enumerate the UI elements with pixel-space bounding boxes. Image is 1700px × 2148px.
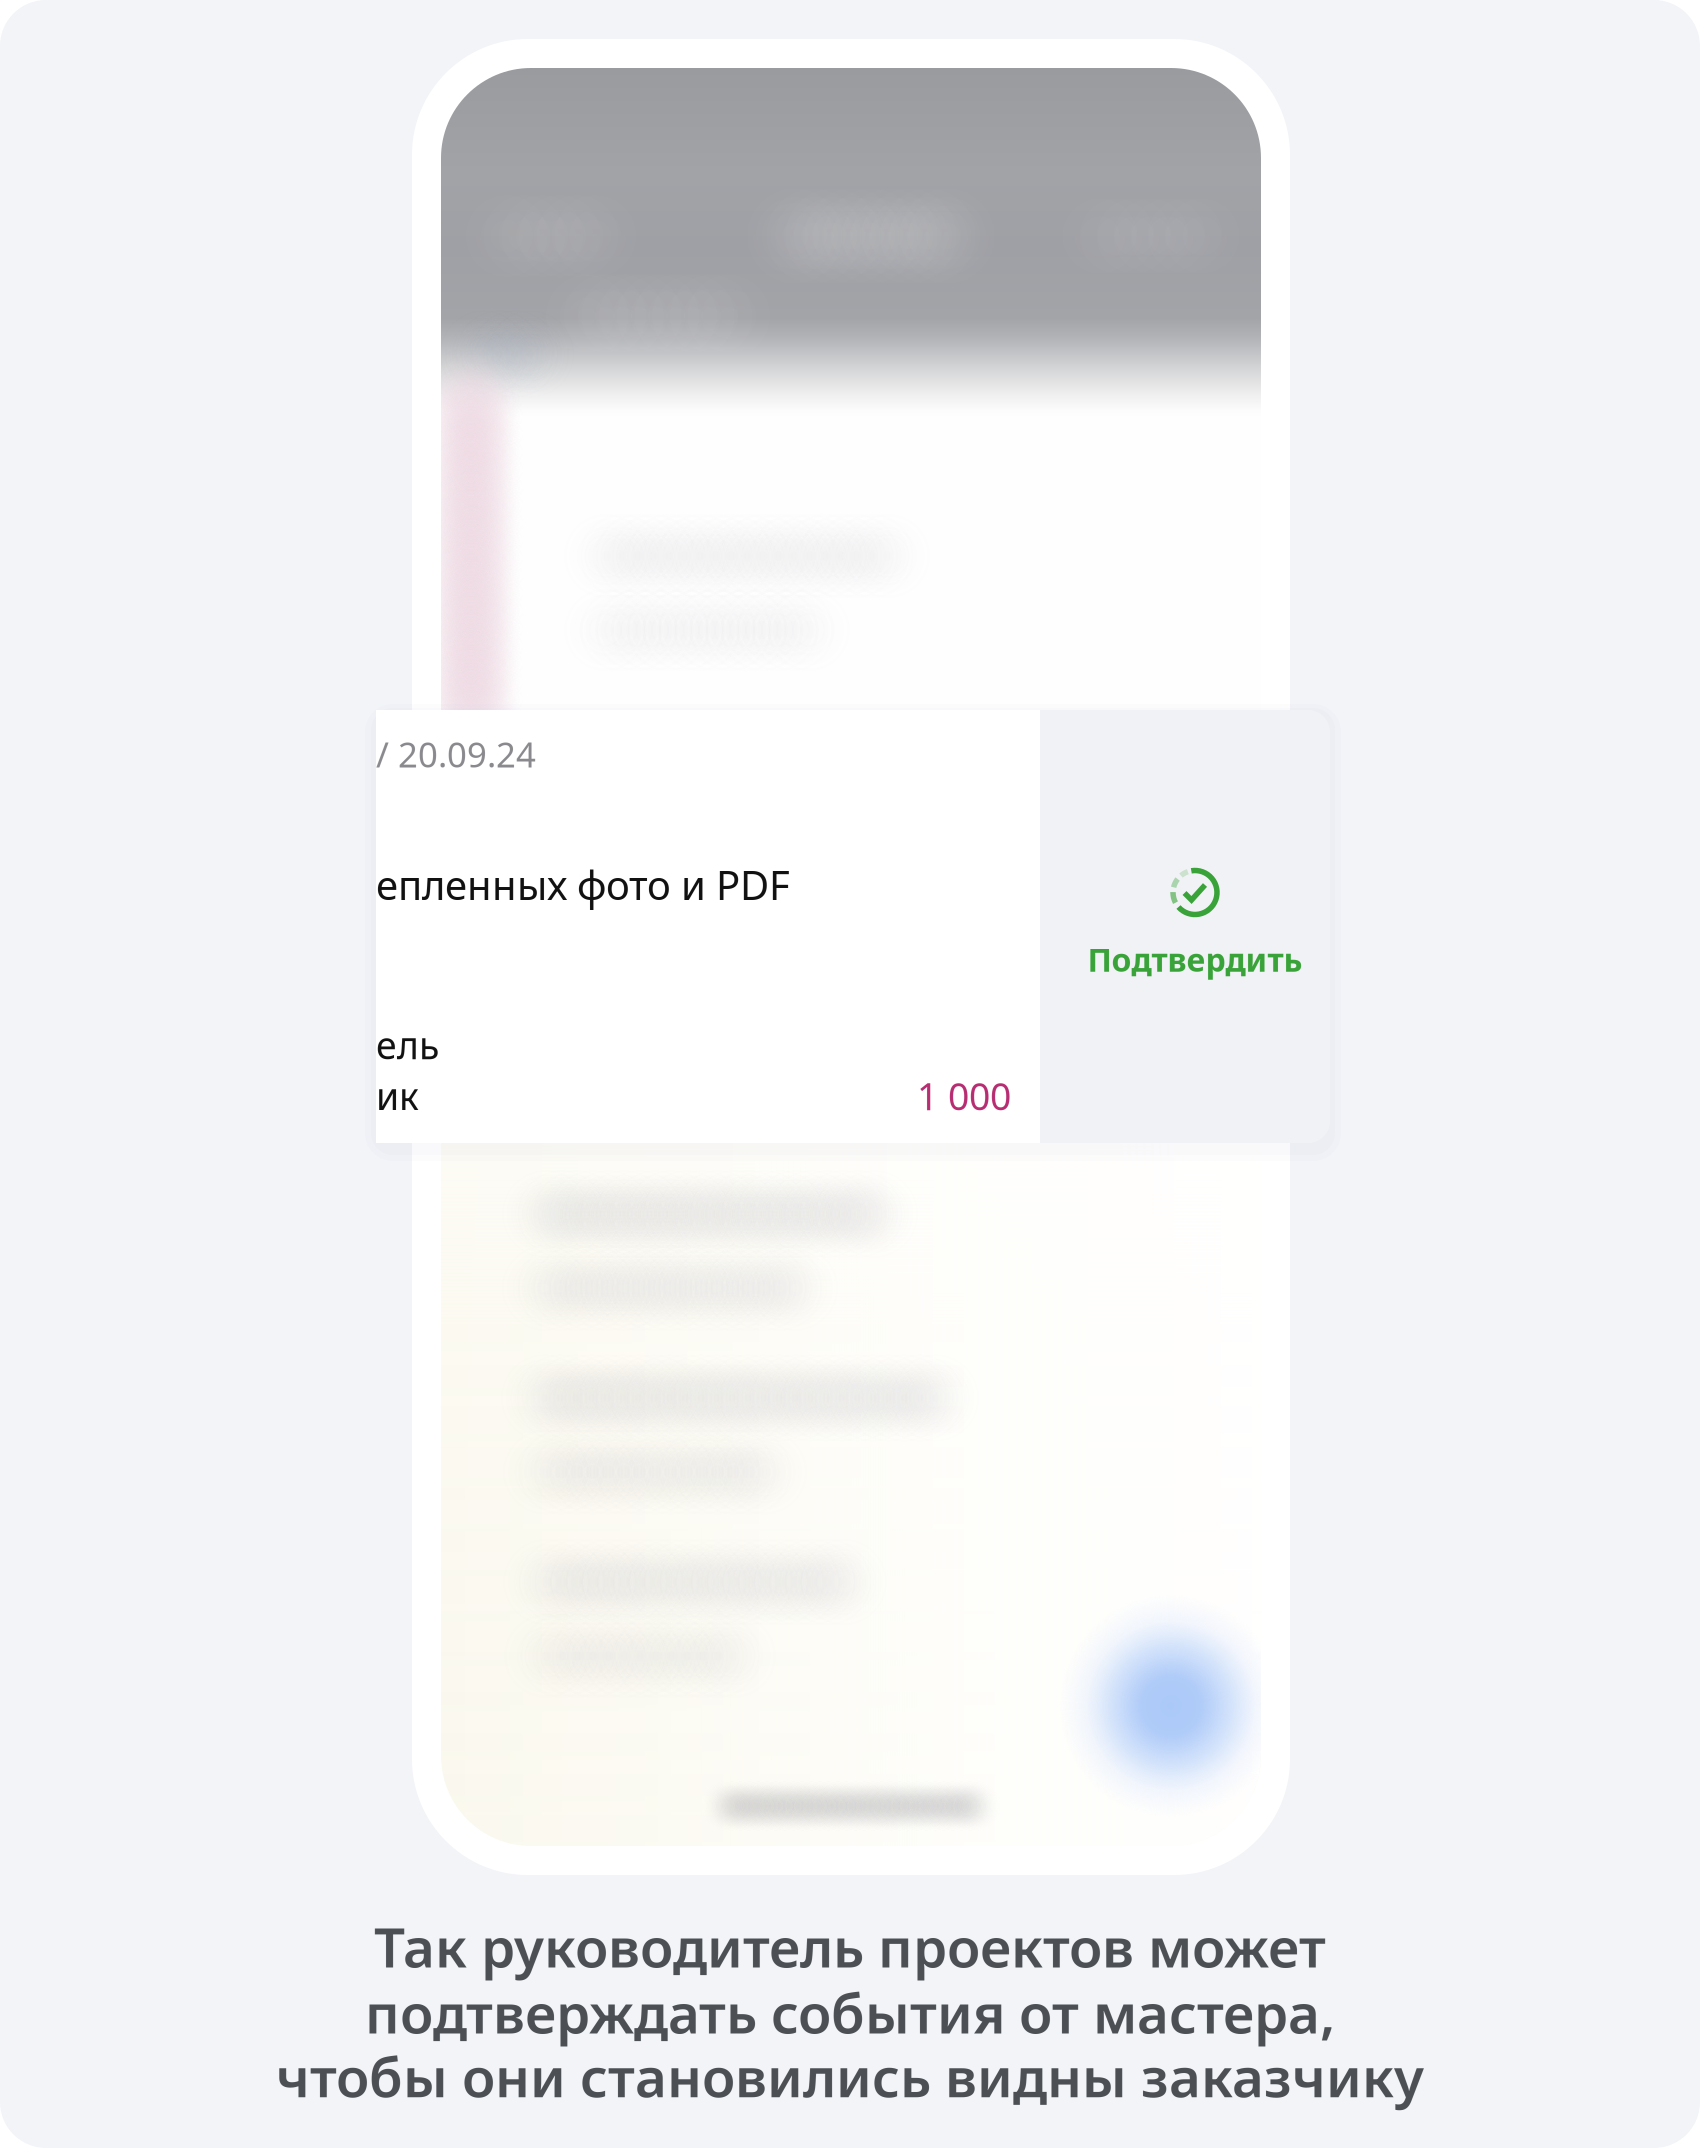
staticText: ик [376, 1071, 419, 1121]
staticText: 1 000 [917, 1071, 1011, 1121]
staticText: епленных фото и PDF [376, 858, 790, 911]
staticText: чтобы они становились видны заказчику [276, 2040, 1424, 2112]
staticText: Подтвердить [1087, 938, 1302, 980]
staticText: подтверждать события от мастера, [365, 1976, 1335, 2049]
button[interactable]: Подтвердить [1047, 710, 1343, 1143]
staticText: ель [376, 1020, 439, 1070]
staticText: Так руководитель проектов может [374, 1910, 1326, 1983]
staticText: / 20.09.24 [376, 731, 536, 777]
